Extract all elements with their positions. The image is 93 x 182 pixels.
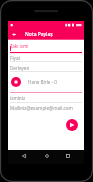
button[interactable]: Fiyat [10,55,81,64]
button[interactable]: Home [42,151,52,161]
staticText: Takı ismi [10,43,29,49]
staticText: isminiz [10,95,26,101]
staticText: Nota Paylaş [25,31,53,38]
staticText: Mailiniz@example@mail.com [10,105,73,111]
button[interactable]: Hane Birle - 0 [11,76,81,88]
button[interactable]: Recents [63,151,73,161]
staticText: Fiyat [10,55,21,61]
button[interactable]: Back [9,29,20,40]
staticText: Hane Birle - 0 [28,79,57,85]
button[interactable]: Derleyen [10,65,81,74]
button[interactable]: Send [66,119,78,131]
button[interactable]: Back [19,151,29,161]
button[interactable]: Takı ismi [10,43,81,52]
button[interactable]: isminiz [10,95,81,104]
staticText: Derleyen [10,65,30,71]
